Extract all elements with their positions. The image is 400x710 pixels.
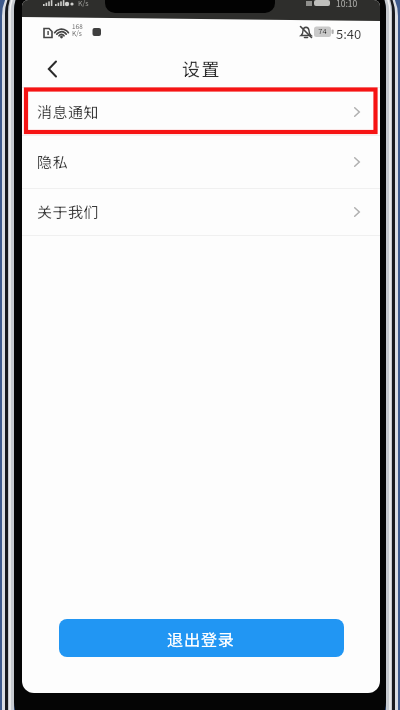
staticText: 10:10 xyxy=(336,0,358,9)
button[interactable] xyxy=(22,44,74,87)
staticText: 74 xyxy=(315,25,330,36)
staticText: K/s xyxy=(78,0,89,8)
button[interactable]: 隐私 xyxy=(22,136,380,188)
button[interactable]: 退出登录 xyxy=(59,619,344,657)
staticText: 隐私 xyxy=(37,151,69,173)
button[interactable]: 关于我们 xyxy=(22,189,380,235)
staticText: 设置 xyxy=(182,55,221,81)
staticText: 168 K/s xyxy=(72,21,83,38)
staticText: 关于我们 xyxy=(37,201,100,223)
staticText: 5:40 xyxy=(336,24,362,43)
staticText: 退出登录 xyxy=(167,627,236,650)
staticText: 消息通知 xyxy=(37,101,100,123)
button[interactable]: 消息通知 xyxy=(22,88,380,135)
